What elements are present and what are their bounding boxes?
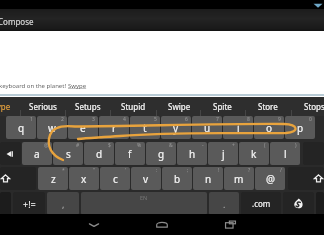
staticText: 8 <box>247 116 250 123</box>
button[interactable]: # <box>53 142 83 165</box>
button[interactable]: : <box>131 167 161 190</box>
button[interactable]: Home <box>140 214 184 235</box>
button[interactable]: Store <box>246 97 290 116</box>
button[interactable] <box>0 192 11 215</box>
staticText: b <box>174 172 181 186</box>
staticText: g <box>158 147 165 161</box>
staticText: l <box>284 147 287 161</box>
staticText: ( <box>264 142 266 149</box>
button[interactable]: % <box>115 142 145 165</box>
button[interactable]: / <box>255 167 285 190</box>
button[interactable]: ! <box>193 167 223 190</box>
button[interactable]: Stops <box>292 97 324 116</box>
button[interactable]: ? <box>224 167 254 190</box>
staticText: w <box>48 121 56 135</box>
button[interactable]: , <box>47 192 79 215</box>
button[interactable]: Compose <box>0 9 324 31</box>
button[interactable]: 9 <box>254 116 284 139</box>
button[interactable]: ) <box>270 142 300 165</box>
staticText: .com <box>252 198 271 209</box>
button[interactable]: Swipe <box>157 97 201 116</box>
button[interactable]: 3 <box>68 116 98 139</box>
button[interactable]: Setups <box>66 97 110 116</box>
staticText: r <box>112 121 117 135</box>
staticText: n <box>205 172 212 186</box>
staticText: Swype <box>0 101 11 112</box>
staticText: Compose <box>0 16 34 27</box>
button[interactable]: Hide keyboard <box>72 214 116 235</box>
button[interactable]: & <box>146 142 176 165</box>
staticText: v <box>143 172 149 186</box>
button[interactable]: - <box>177 142 207 165</box>
staticText: 7 <box>216 116 219 123</box>
staticText: t <box>143 121 147 135</box>
button[interactable] <box>283 192 314 215</box>
button[interactable]: 4 <box>99 116 129 139</box>
staticText: Swipe <box>168 101 191 112</box>
staticText: 0 <box>309 116 312 123</box>
staticText: * <box>62 167 65 174</box>
staticText: d <box>96 147 103 161</box>
button[interactable]: 6 <box>161 116 191 139</box>
staticText: 4 <box>123 116 126 123</box>
button[interactable]: 8 <box>223 116 253 139</box>
button[interactable]: Recent apps <box>208 214 252 235</box>
button[interactable]: Spite <box>200 97 244 116</box>
button[interactable]: Swype <box>0 97 20 116</box>
staticText: e <box>80 121 86 135</box>
staticText: Spite <box>213 101 232 112</box>
button[interactable]: +!= <box>13 192 45 215</box>
button[interactable]: ' <box>100 167 130 190</box>
button[interactable] <box>0 142 21 165</box>
button[interactable]: * <box>38 167 68 190</box>
staticText: f <box>128 147 132 161</box>
staticText: @ <box>266 172 275 186</box>
button[interactable]: Serious <box>21 97 65 116</box>
button[interactable]: Shift <box>288 167 324 190</box>
staticText: y <box>173 121 179 135</box>
staticText: , <box>62 198 65 210</box>
button[interactable]: Shift <box>0 167 36 190</box>
staticText: k <box>251 147 257 161</box>
staticText: # <box>76 142 80 149</box>
staticText: o <box>266 121 273 135</box>
staticText: EN <box>140 194 148 201</box>
staticText: 9 <box>278 116 281 123</box>
button[interactable]: @ <box>22 142 52 165</box>
button[interactable]: " <box>69 167 99 190</box>
staticText: . <box>223 198 226 210</box>
staticText: @ <box>44 142 49 149</box>
button[interactable]: Space <box>81 192 207 215</box>
button[interactable]: 7 <box>192 116 222 139</box>
staticText: m <box>234 172 244 186</box>
button[interactable]: ; <box>162 167 192 190</box>
button[interactable]: 0 <box>285 116 315 139</box>
staticText: p <box>297 121 304 135</box>
staticText: 5 <box>154 116 157 123</box>
staticText: j <box>222 147 225 161</box>
staticText: Setups <box>75 101 101 112</box>
button[interactable]: Stupid <box>111 97 155 116</box>
button[interactable] <box>316 192 324 215</box>
staticText: ? <box>248 167 251 174</box>
button[interactable]: + <box>208 142 238 165</box>
button[interactable]: ( <box>239 142 269 165</box>
button[interactable]: 1 <box>6 116 36 139</box>
staticText: 1 <box>30 116 33 123</box>
staticText: & <box>169 142 173 149</box>
staticText: " <box>93 167 96 174</box>
staticText: % <box>137 142 142 149</box>
staticText: / <box>280 167 282 174</box>
staticText: +!= <box>23 198 36 210</box>
staticText: i <box>237 121 240 135</box>
staticText: Stupid <box>121 101 146 112</box>
button[interactable]: .com <box>241 192 281 215</box>
staticText: 3 <box>92 116 95 123</box>
button[interactable]: 5 <box>130 116 160 139</box>
button[interactable]: 2 <box>37 116 67 139</box>
button[interactable]: $ <box>84 142 114 165</box>
staticText: Swype <box>68 82 87 90</box>
staticText: x <box>81 172 87 186</box>
button[interactable]: . <box>209 192 239 215</box>
